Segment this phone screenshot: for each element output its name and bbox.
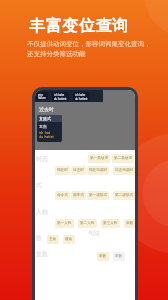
- staticText: ich habe du hattest: [75, 93, 88, 100]
- button[interactable]: 主动: [47, 235, 59, 244]
- staticText: 被动: [65, 237, 73, 242]
- staticText: 第二人称: [80, 221, 95, 226]
- button[interactable]: 第二虚拟式: [113, 191, 135, 200]
- staticText: 单数: [99, 254, 107, 259]
- staticText: 过去时: [73, 168, 84, 173]
- button[interactable]: 命令式: [55, 191, 70, 200]
- staticText: ich hat du hattet: [39, 131, 54, 139]
- button[interactable]: 第二人称: [78, 219, 97, 228]
- staticText: 过去完成时: [115, 168, 133, 173]
- staticText: 直陈式: [73, 193, 84, 198]
- staticText: 人称: [36, 208, 48, 216]
- button[interactable]: 第一虚拟式: [87, 191, 109, 200]
- staticText: 丰富变位查询: [29, 16, 129, 36]
- button[interactable]: 单数: [97, 252, 109, 261]
- button[interactable]: 直陈式: [71, 191, 86, 200]
- staticText: 第一人称: [57, 221, 72, 226]
- staticText: 复数: [39, 124, 47, 129]
- staticText: 第二类动词: [114, 156, 132, 161]
- button[interactable]: 复数: [113, 252, 125, 261]
- staticText: ich habe du hattest: [54, 93, 67, 100]
- staticText: 时态: [36, 155, 48, 163]
- staticText: 过去时: [39, 106, 54, 112]
- button[interactable]: 第三人称: [101, 219, 120, 228]
- button[interactable]: 動詞 haben: [36, 92, 48, 100]
- staticText: 動詞 haben: [38, 93, 46, 99]
- staticText: 单数: [126, 221, 134, 226]
- staticText: 现在时: [57, 168, 68, 173]
- staticText: 句法: [88, 229, 100, 237]
- button[interactable]: 过去完成时: [113, 166, 135, 175]
- staticText: 不仅提供动词变位，形容词词尾变化查询， 还支持分类筛选功能: [27, 40, 151, 58]
- staticText: 第三人称: [103, 221, 118, 226]
- staticText: 直陈式: [39, 116, 51, 121]
- staticText: 第一虚拟式: [89, 193, 107, 198]
- button[interactable]: 过去时: [71, 166, 86, 175]
- staticText: 主动: [49, 237, 57, 242]
- staticText: 式: [36, 181, 42, 189]
- button[interactable]: 现在时: [55, 166, 70, 175]
- staticText: 命令式: [57, 193, 68, 198]
- staticText: 第一类动词: [90, 156, 108, 161]
- staticText: 复数: [36, 250, 48, 258]
- button[interactable]: ich habe du hattest: [73, 92, 90, 101]
- staticText: 数: [36, 234, 42, 242]
- button[interactable]: 第二类动词: [112, 154, 134, 163]
- button[interactable]: 现在完成时: [87, 166, 109, 175]
- staticText: 现在完成时: [89, 168, 107, 173]
- button[interactable]: 第一类动词: [88, 154, 110, 163]
- button[interactable]: 单数: [124, 219, 135, 228]
- staticText: 第二虚拟式: [115, 193, 133, 198]
- staticText: 复数: [115, 254, 123, 259]
- button[interactable]: 被动: [63, 235, 75, 244]
- button[interactable]: ich habe du hattest: [52, 92, 69, 101]
- button[interactable]: 第一人称: [55, 219, 74, 228]
